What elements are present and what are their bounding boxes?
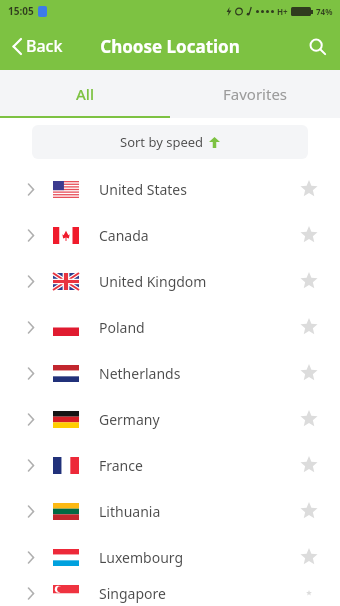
staticText: Lithuania [99,502,286,521]
staticText: Favorites [223,84,288,104]
button[interactable]: Favorite Germany [286,400,332,438]
button[interactable]: Poland [0,304,340,350]
button[interactable]: Favorite United States [286,170,332,208]
staticText: Canada [99,226,286,245]
staticText: United States [99,180,286,199]
button[interactable]: All [0,70,170,118]
button[interactable]: Favorite Luxembourg [286,538,332,576]
button[interactable]: United Kingdom [0,258,340,304]
staticText: United Kingdom [99,272,286,291]
staticText: H+ [277,6,288,17]
button[interactable]: Netherlands [0,350,340,396]
staticText: Back [26,35,63,57]
button[interactable]: Canada [0,212,340,258]
staticText: Germany [99,410,286,429]
button[interactable]: Lithuania [0,488,340,534]
staticText: All [76,84,94,104]
staticText: Netherlands [99,364,286,383]
button[interactable]: Favorite France [286,446,332,484]
button[interactable]: Germany [0,396,340,442]
staticText: Luxembourg [99,548,286,567]
button[interactable]: Luxembourg [0,534,340,580]
button[interactable]: United States [0,166,340,212]
button[interactable]: Favorite Poland [286,308,332,346]
staticText: France [99,456,286,475]
button[interactable]: Favorites [170,70,340,118]
staticText: Choose Location [100,35,240,58]
staticText: Poland [99,318,286,337]
staticText: Sort by speed [120,133,204,151]
button[interactable]: Back [0,27,75,65]
button[interactable]: Favorite Netherlands [286,354,332,392]
button[interactable]: Sort by speed [32,125,308,159]
staticText: Singapore [99,584,286,603]
button[interactable]: Favorite United Kingdom [286,262,332,300]
button[interactable]: France [0,442,340,488]
button[interactable]: Favorite Lithuania [286,492,332,530]
staticText: 74% [316,6,333,17]
staticText: 15:05 [8,4,34,18]
button[interactable]: Search [295,28,340,65]
button[interactable]: Favorite Canada [286,216,332,254]
button[interactable]: Singapore [0,580,340,606]
